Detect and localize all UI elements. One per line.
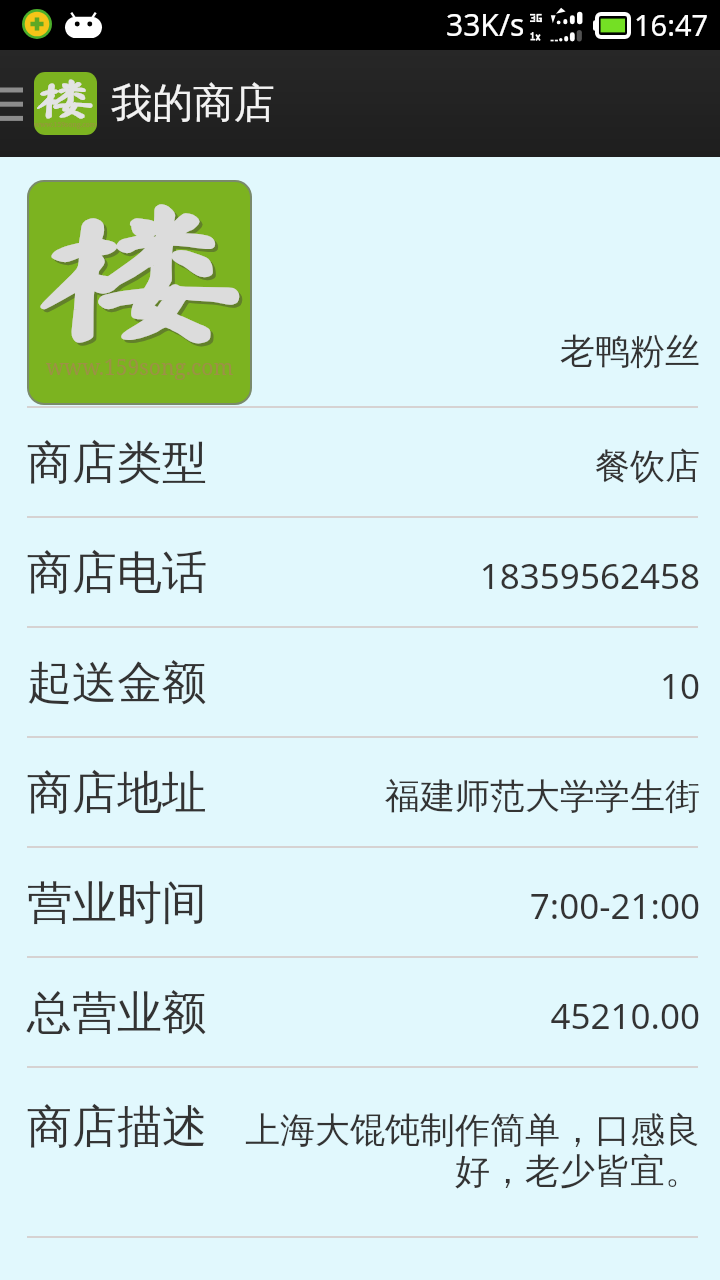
button[interactable]: 楼 [34, 50, 275, 157]
staticText: 楼 [36, 77, 95, 119]
staticText: 33K/s [446, 4, 525, 45]
staticText: 餐饮店 [221, 444, 700, 488]
staticText: www.159song.com [34, 120, 97, 130]
staticText: 老鸭粉丝 [560, 329, 700, 373]
button[interactable]: 商店描述 [0, 1068, 720, 1236]
staticText: 商店描述 [27, 1099, 207, 1156]
staticText: 楼 [35, 193, 245, 347]
staticText: 18359562458 [221, 552, 700, 600]
staticText: 起送金额 [27, 655, 207, 712]
button[interactable]: Shop logo [27, 180, 252, 405]
staticText: 45210.00 [221, 992, 700, 1040]
staticText: 楼 [38, 196, 248, 350]
staticText: 总营业额 [27, 985, 207, 1042]
button[interactable]: 营业时间 [0, 848, 720, 956]
staticText: 16:47 [634, 5, 709, 44]
button[interactable]: 总营业额 [0, 958, 720, 1066]
button[interactable]: 商店地址 [0, 738, 720, 846]
staticText: www.159song.com [46, 353, 234, 382]
staticText: 商店地址 [27, 765, 207, 822]
button[interactable]: Menu [0, 50, 34, 157]
staticText: 商店电话 [27, 545, 207, 602]
button[interactable]: 商店类型 [0, 408, 720, 516]
staticText: 7:00-21:00 [221, 882, 700, 930]
staticText: 商店类型 [27, 435, 207, 492]
button[interactable]: 商店电话 [0, 518, 720, 626]
button[interactable]: 起送金额 [0, 628, 720, 736]
staticText: 我的商店 [111, 78, 275, 130]
staticText: 营业时间 [27, 875, 207, 932]
staticText: 10 [221, 662, 700, 710]
staticText: 上海大馄饨制作简单，口感良好，老少皆宜。 [221, 1108, 700, 1194]
staticText: 福建师范大学学生街 [221, 774, 700, 818]
